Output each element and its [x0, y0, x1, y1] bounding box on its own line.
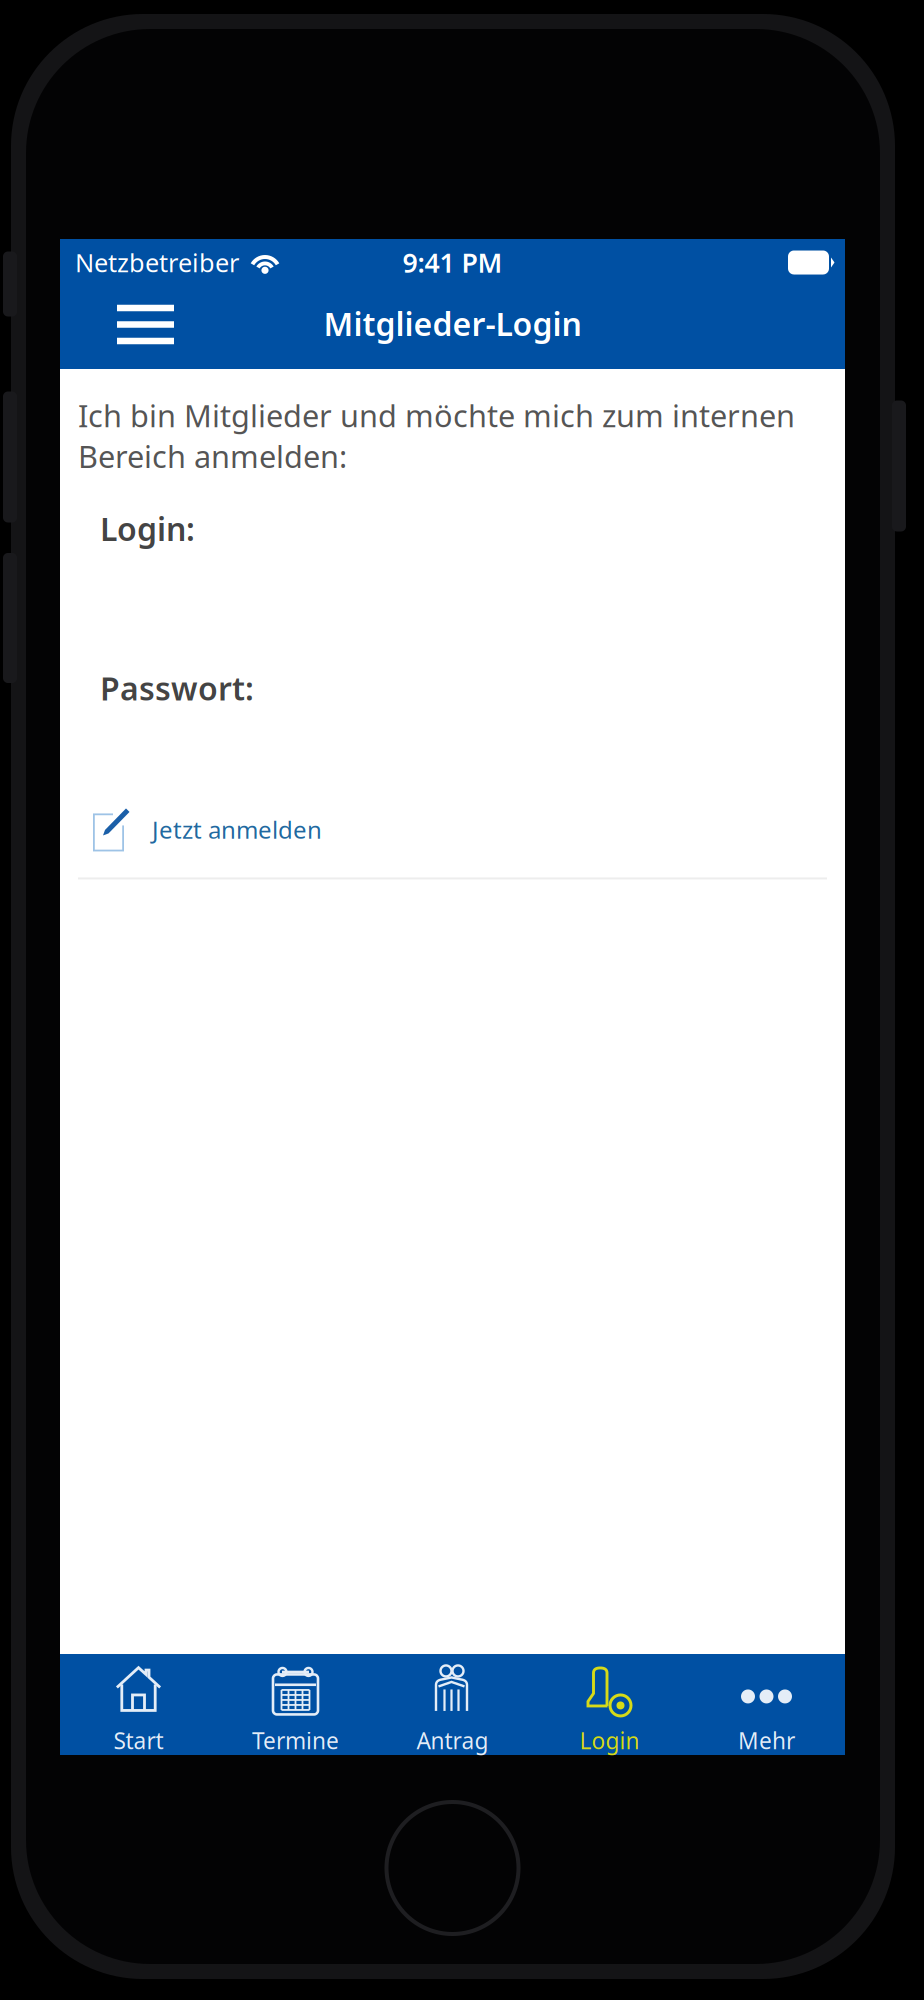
- button[interactable]: Termine: [217, 1654, 374, 1755]
- staticText: Start: [113, 1725, 163, 1755]
- staticText: Jetzt anmelden: [152, 813, 322, 845]
- button[interactable]: Start: [60, 1654, 217, 1755]
- staticText: Mitglieder-Login: [323, 302, 581, 345]
- staticText: Login: [579, 1725, 639, 1755]
- staticText: Passwort:: [100, 667, 254, 709]
- button[interactable]: Antrag: [374, 1654, 531, 1755]
- button[interactable]: Login: [531, 1654, 688, 1755]
- button[interactable]: Menü: [60, 286, 194, 369]
- staticText: Antrag: [416, 1725, 488, 1755]
- staticText: 9:41 PM: [402, 245, 502, 280]
- staticText: Mehr: [738, 1725, 795, 1755]
- staticText: Netzbetreiber: [75, 246, 239, 279]
- staticText: Login:: [100, 507, 195, 550]
- button[interactable]: Jetzt anmelden: [60, 805, 845, 853]
- staticText: Termine: [252, 1725, 339, 1755]
- button[interactable]: Mehr: [688, 1654, 845, 1755]
- staticText: Ich bin Mitglieder und möchte mich zum i…: [78, 395, 795, 476]
